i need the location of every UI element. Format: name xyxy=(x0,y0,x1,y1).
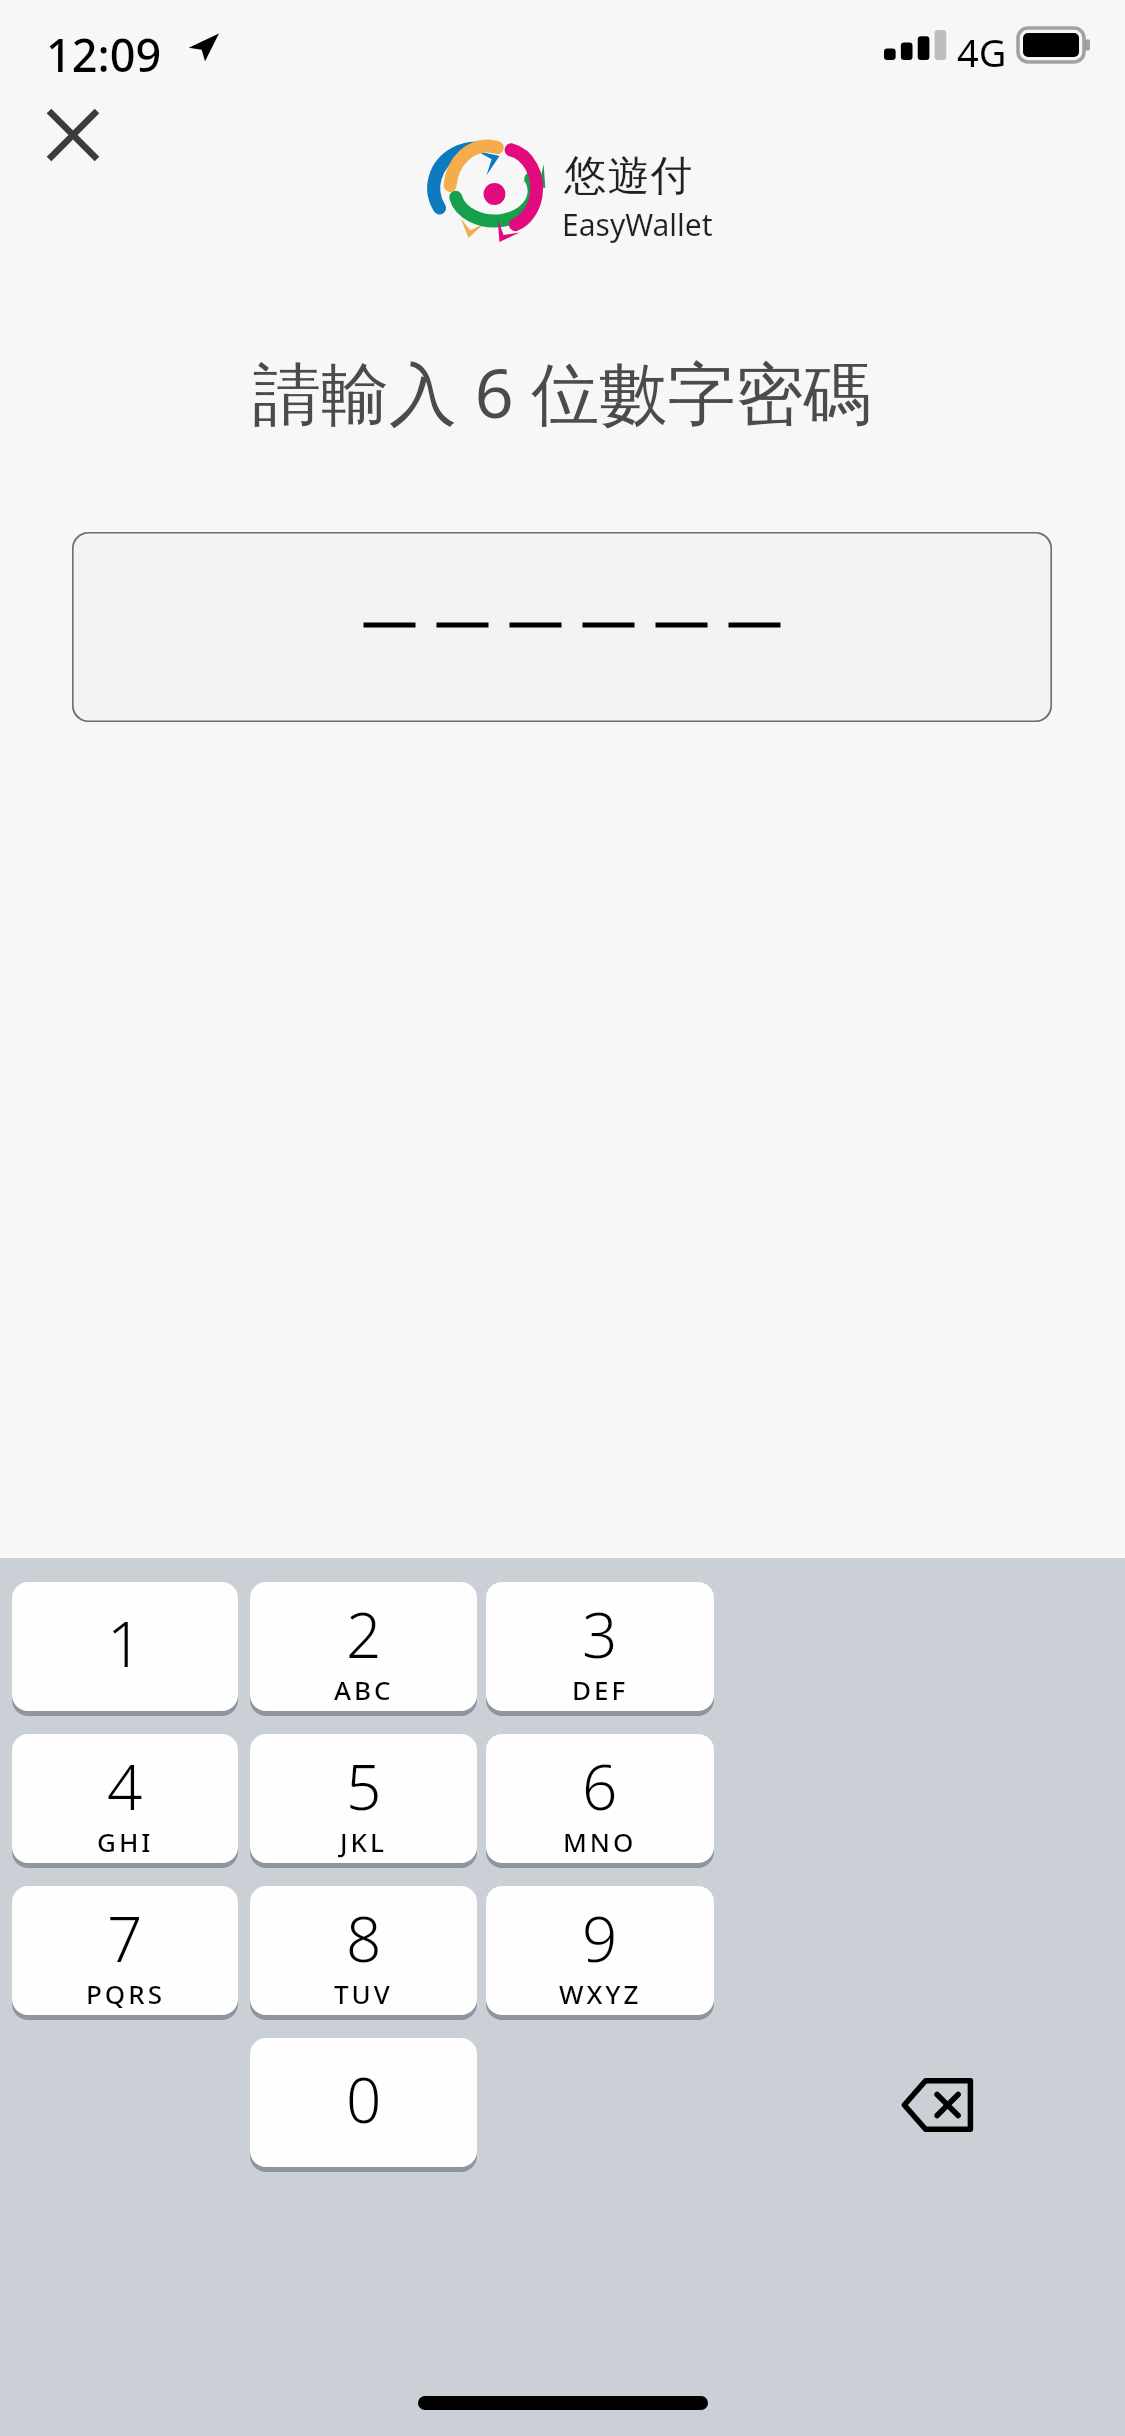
button[interactable]: 0 xyxy=(250,2038,477,2172)
staticText: 3 xyxy=(582,1592,618,1676)
button[interactable]: 6 xyxy=(486,1734,714,1868)
button[interactable]: Close xyxy=(28,90,118,180)
button[interactable]: 5 xyxy=(250,1734,477,1868)
staticText: PQRS xyxy=(86,1976,165,2011)
button[interactable]: 7 xyxy=(12,1886,238,2020)
staticText: MNO xyxy=(563,1824,637,1859)
staticText: JKL xyxy=(340,1824,387,1859)
staticText: 6 xyxy=(582,1744,618,1828)
staticText: 5 xyxy=(346,1744,382,1828)
button[interactable]: 2 xyxy=(250,1582,477,1716)
button[interactable]: 4 xyxy=(12,1734,238,1868)
staticText: 8 xyxy=(346,1896,382,1980)
staticText: TUV xyxy=(334,1976,393,2011)
button[interactable]: 8 xyxy=(250,1886,477,2020)
staticText: 2 xyxy=(346,1592,382,1676)
button[interactable]: 1 xyxy=(12,1582,238,1716)
staticText: 1 xyxy=(107,1601,143,1685)
button[interactable] xyxy=(72,532,1052,722)
staticText: GHI xyxy=(97,1824,154,1859)
staticText: 悠遊付 xyxy=(564,150,693,203)
staticText: 7 xyxy=(107,1896,143,1980)
button[interactable]: 9 xyxy=(486,1886,714,2020)
staticText: 請輸入 6 位數字密碼 xyxy=(253,345,872,438)
staticText: 0 xyxy=(346,2057,382,2141)
staticText: 4 xyxy=(107,1744,143,1828)
staticText: DEF xyxy=(572,1672,629,1707)
staticText: ABC xyxy=(334,1672,394,1707)
button[interactable]: 3 xyxy=(486,1582,714,1716)
button[interactable]: Backspace xyxy=(830,2038,1050,2172)
staticText: 12:09 xyxy=(46,24,162,85)
staticText: 4G xyxy=(957,26,1007,78)
staticText: 9 xyxy=(582,1896,618,1980)
staticText: WXYZ xyxy=(559,1976,642,2011)
staticText: EasyWallet xyxy=(562,204,713,245)
